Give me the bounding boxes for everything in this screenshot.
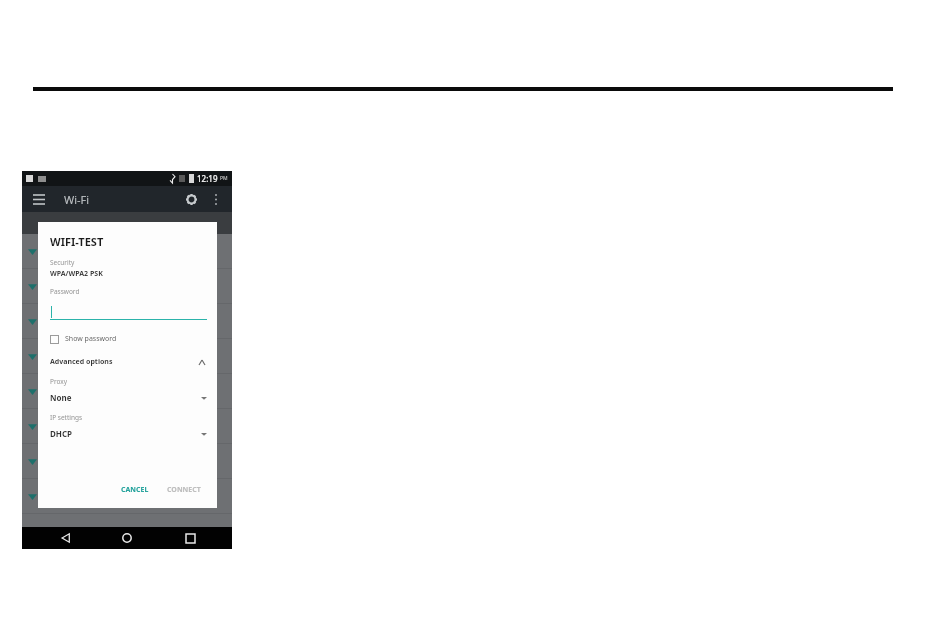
button[interactable]: Open navigation drawer xyxy=(30,190,48,208)
staticText: PM xyxy=(220,175,228,182)
staticText: IP settings xyxy=(50,413,83,422)
staticText: Wi-Fi xyxy=(64,192,90,207)
button[interactable]: Home xyxy=(107,527,147,549)
button[interactable]: None xyxy=(50,392,207,403)
staticText: WIFI-TEST xyxy=(50,234,104,249)
staticText: Advanced options xyxy=(50,357,113,367)
button[interactable]: CANCEL xyxy=(117,482,153,498)
button[interactable]: Advanced options xyxy=(50,357,207,367)
staticText: Show password xyxy=(65,334,117,344)
staticText: WPA/WPA2 PSK xyxy=(50,269,103,279)
staticText: DHCP xyxy=(50,428,73,439)
staticText: CONNECT xyxy=(167,485,201,495)
staticText: None xyxy=(50,392,72,403)
button[interactable]: Show password xyxy=(50,334,207,344)
button[interactable] xyxy=(50,304,207,320)
staticText: 12:19 xyxy=(197,173,218,184)
staticText: Password xyxy=(50,287,80,296)
staticText: CANCEL xyxy=(121,485,149,495)
button[interactable]: Recent apps xyxy=(170,527,210,549)
button[interactable]: DHCP xyxy=(50,428,207,439)
button[interactable]: Back xyxy=(45,527,85,549)
button[interactable]: CONNECT xyxy=(163,482,205,498)
staticText: Security xyxy=(50,258,75,267)
button[interactable]: More options xyxy=(208,191,224,207)
button[interactable]: Wi-Fi settings xyxy=(182,190,200,208)
staticText: Proxy xyxy=(50,377,68,386)
